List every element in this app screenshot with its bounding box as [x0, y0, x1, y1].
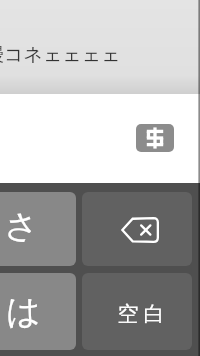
staticText: 空白: [115, 301, 167, 327]
button[interactable]: Toggle input mode: [136, 124, 174, 152]
button[interactable]: 鰻コネェェェェ: [0, 0, 200, 94]
button[interactable]: は: [0, 273, 76, 350]
button[interactable]: 空白: [82, 273, 192, 350]
staticText: は: [6, 290, 41, 333]
button[interactable]: さ: [0, 192, 76, 266]
staticText: 鰻コネェェェェ: [0, 43, 121, 67]
staticText: さ: [4, 205, 39, 248]
button[interactable]: Backspace: [82, 192, 192, 266]
